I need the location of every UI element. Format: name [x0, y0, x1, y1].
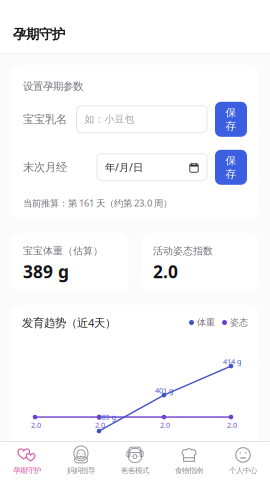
- staticText: 末次月经: [23, 160, 67, 174]
- button[interactable]: 保存: [215, 102, 247, 137]
- staticText: 发育趋势（近4天）: [22, 315, 116, 330]
- staticText: 宝宝体重（估算）: [23, 245, 103, 257]
- staticText: 设置孕期参数: [23, 80, 83, 93]
- staticText: 体重: [197, 317, 215, 328]
- staticText: 2.0: [227, 420, 237, 430]
- staticText: 食物指南: [175, 466, 203, 475]
- button[interactable]: 妈妈指导: [54, 442, 108, 480]
- button[interactable]: 孕期守护: [0, 442, 54, 480]
- staticText: 2.0: [31, 420, 41, 430]
- staticText: 414 g: [223, 356, 241, 366]
- staticText: 妈妈指导: [67, 466, 95, 475]
- staticText: 年/月/日: [105, 160, 143, 174]
- button[interactable]: 保存: [215, 150, 247, 185]
- staticText: 爸爸模式: [121, 466, 149, 475]
- staticText: 宝宝乳名: [23, 112, 67, 126]
- staticText: 保存: [225, 154, 236, 180]
- staticText: 401 g: [155, 385, 173, 395]
- staticText: 孕期守护: [13, 466, 41, 475]
- staticText: 389 g: [23, 260, 69, 283]
- staticText: 389 g: [97, 412, 115, 422]
- staticText: 当前推算：第 161 天（约第 23.0 周）: [23, 197, 172, 209]
- button[interactable]: 个人中心: [216, 442, 270, 480]
- staticText: 个人中心: [229, 466, 257, 475]
- staticText: 2.0: [160, 420, 170, 430]
- button[interactable]: 年/月/日: [97, 154, 207, 181]
- staticText: 孕期守护: [13, 26, 65, 42]
- button[interactable]: 爸爸模式: [108, 442, 162, 480]
- staticText: 姿态: [230, 317, 248, 328]
- staticText: 如：小豆包: [84, 113, 134, 125]
- staticText: 保存: [225, 106, 236, 132]
- staticText: 活动姿态指数: [153, 245, 213, 257]
- staticText: 2.0: [95, 420, 105, 430]
- button[interactable]: 食物指南: [162, 442, 216, 480]
- staticText: 2.0: [153, 260, 178, 283]
- button[interactable]: 如：小豆包: [76, 106, 207, 133]
